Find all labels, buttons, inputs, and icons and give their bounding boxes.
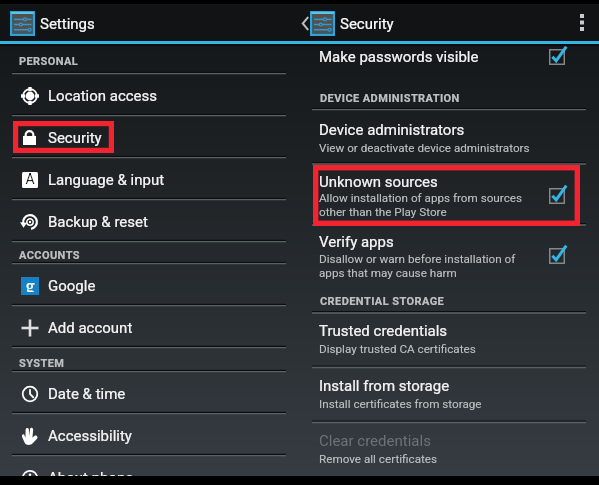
button[interactable]: Toggle Unknown sources	[543, 182, 571, 210]
staticText: Language & input	[48, 171, 165, 189]
staticText: Allow installation of apps from sources	[319, 191, 522, 205]
staticText: Remove all certificates	[319, 452, 438, 466]
staticText: Date & time	[48, 385, 126, 403]
staticText: g	[25, 274, 35, 292]
button[interactable]: Security	[0, 116, 298, 158]
button[interactable]: About phone	[0, 456, 298, 485]
staticText: other than the Play Store	[319, 205, 447, 219]
staticText: Security	[48, 129, 102, 147]
button[interactable]: Backup & reset	[0, 200, 298, 242]
staticText: About phone	[48, 469, 134, 485]
button[interactable]: g	[0, 264, 298, 306]
staticText: Install from storage	[319, 377, 450, 395]
staticText: Location access	[48, 87, 158, 105]
button[interactable]: Toggle Verify apps	[543, 242, 571, 270]
staticText: CREDENTIAL STORAGE	[320, 295, 445, 308]
staticText: Backup & reset	[48, 213, 148, 231]
button[interactable]: A	[0, 158, 298, 200]
staticText: Unknown sources	[319, 173, 438, 191]
staticText: DEVICE ADMINISTRATION	[320, 92, 460, 105]
staticText: Security	[340, 15, 394, 33]
staticText: Clear credentials	[319, 432, 431, 450]
staticText: A	[25, 172, 35, 187]
button[interactable]: More options	[565, 4, 599, 41]
staticText: Settings	[40, 15, 95, 33]
staticText: Trusted credentials	[319, 322, 448, 340]
button[interactable]: Location access	[0, 74, 298, 116]
staticText: ACCOUNTS	[19, 249, 80, 262]
staticText: View or deactivate device administrators	[319, 141, 530, 155]
staticText: SYSTEM	[19, 357, 65, 370]
staticText: apps that may cause harm	[319, 266, 457, 280]
staticText: Disallow or warn before installation of	[319, 252, 516, 266]
button[interactable]: Accessibility	[0, 414, 298, 456]
staticText: Verify apps	[319, 233, 394, 251]
staticText: Make passwords visible	[319, 48, 479, 66]
button[interactable]: Date & time	[0, 372, 298, 414]
staticText: Device administrators	[319, 121, 465, 139]
staticText: Accessibility	[48, 427, 132, 445]
button[interactable]: Navigate up	[296, 4, 406, 41]
staticText: Add account	[48, 319, 133, 337]
button[interactable]: Toggle Make passwords visible	[543, 43, 571, 71]
button[interactable]: Add account	[0, 306, 298, 348]
staticText: Display trusted CA certificates	[319, 342, 476, 356]
staticText: Install certificates from storage	[319, 397, 482, 411]
staticText: PERSONAL	[19, 55, 79, 68]
staticText: Google	[48, 277, 96, 295]
button[interactable]: Settings	[0, 4, 296, 41]
